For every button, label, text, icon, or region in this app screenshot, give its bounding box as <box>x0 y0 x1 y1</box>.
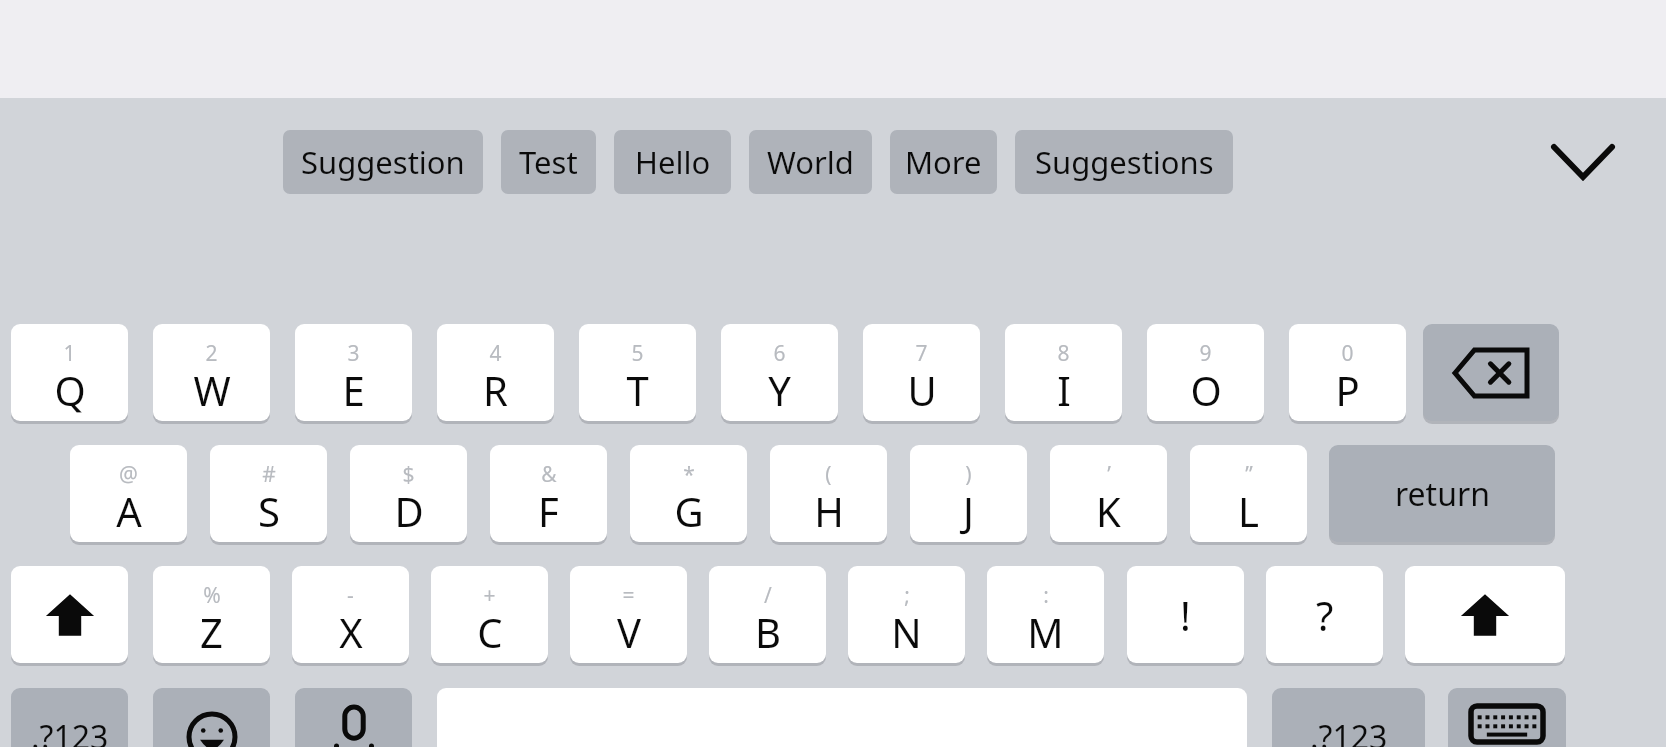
staticText: X <box>339 605 363 659</box>
button[interactable]: 5 <box>579 324 696 421</box>
button[interactable]: .?123 <box>11 688 128 747</box>
staticText: S <box>258 484 280 538</box>
button[interactable]: * <box>630 445 747 542</box>
staticText: T <box>626 363 649 417</box>
staticText: + <box>483 581 496 610</box>
button[interactable]: : <box>987 566 1104 663</box>
button[interactable]: Shift <box>11 566 128 663</box>
button[interactable]: 7 <box>863 324 980 421</box>
staticText: ( <box>825 460 832 489</box>
button[interactable]: 1 <box>11 324 128 421</box>
staticText: K <box>1096 484 1121 538</box>
button[interactable]: ) <box>910 445 1027 542</box>
staticText: 4 <box>489 339 502 368</box>
staticText: N <box>891 605 922 659</box>
staticText: 0 <box>1341 339 1354 368</box>
button[interactable]: 0 <box>1289 324 1406 421</box>
staticText: 9 <box>1199 339 1212 368</box>
staticText: / <box>764 581 772 610</box>
button[interactable]: ” <box>1190 445 1307 542</box>
staticText: 5 <box>631 339 644 368</box>
button[interactable]: .?123 <box>1272 688 1425 747</box>
staticText: 2 <box>205 339 218 368</box>
button[interactable]: / <box>709 566 826 663</box>
button[interactable]: - <box>292 566 409 663</box>
staticText: A <box>116 484 142 538</box>
button[interactable]: Hide keyboard <box>1448 688 1566 747</box>
staticText: G <box>674 484 704 538</box>
staticText: 7 <box>915 339 928 368</box>
button[interactable]: + <box>431 566 548 663</box>
staticText: * <box>683 460 695 489</box>
button[interactable]: 3 <box>295 324 412 421</box>
staticText: Z <box>200 605 223 659</box>
button[interactable]: More <box>890 130 997 194</box>
staticText: B <box>755 605 781 659</box>
staticText: ? <box>1316 588 1334 642</box>
staticText: O <box>1190 363 1222 417</box>
staticText: E <box>342 363 365 417</box>
button[interactable]: 2 <box>153 324 270 421</box>
staticText: Suggestion <box>301 141 465 183</box>
staticText: 3 <box>347 339 360 368</box>
button[interactable]: Suggestion <box>283 130 483 194</box>
button[interactable]: = <box>570 566 687 663</box>
button[interactable]: 9 <box>1147 324 1264 421</box>
button[interactable]: $ <box>350 445 467 542</box>
button[interactable]: 8 <box>1005 324 1122 421</box>
staticText: @ <box>119 460 138 489</box>
staticText: = <box>622 581 635 610</box>
staticText: F <box>538 484 559 538</box>
button[interactable]: % <box>153 566 270 663</box>
staticText: P <box>1335 363 1360 417</box>
button[interactable]: & <box>490 445 607 542</box>
button[interactable]: 4 <box>437 324 554 421</box>
staticText: C <box>477 605 503 659</box>
staticText: J <box>963 484 974 538</box>
staticText: Test <box>519 141 578 183</box>
staticText: Q <box>54 363 86 417</box>
staticText: L <box>1238 484 1259 538</box>
staticText: W <box>193 363 231 417</box>
staticText: ” <box>1245 460 1253 489</box>
button[interactable]: Backspace <box>1423 324 1559 421</box>
button[interactable]: Hide suggestions <box>1528 127 1638 197</box>
button[interactable]: Hello <box>614 130 731 194</box>
staticText: ’ <box>1107 460 1111 489</box>
staticText: # <box>262 460 276 489</box>
staticText: 6 <box>773 339 786 368</box>
staticText: ; <box>904 581 910 610</box>
staticText: World <box>767 141 854 183</box>
staticText: 8 <box>1057 339 1070 368</box>
staticText: & <box>541 460 557 489</box>
button[interactable]: ; <box>848 566 965 663</box>
staticText: ! <box>1180 588 1191 642</box>
button[interactable]: Test <box>501 130 596 194</box>
button[interactable]: # <box>210 445 327 542</box>
staticText: Hello <box>635 141 711 183</box>
staticText: V <box>617 605 641 659</box>
staticText: - <box>347 581 354 610</box>
button[interactable]: ’ <box>1050 445 1167 542</box>
staticText: Suggestions <box>1035 141 1214 183</box>
button[interactable]: Emoji <box>153 688 270 747</box>
button[interactable]: 6 <box>721 324 838 421</box>
button[interactable]: Voice input <box>295 688 412 747</box>
button[interactable]: Shift <box>1405 566 1565 663</box>
staticText: .?123 <box>1310 715 1388 747</box>
button[interactable]: ? <box>1266 566 1383 663</box>
staticText: return <box>1395 472 1490 516</box>
button[interactable]: ( <box>770 445 887 542</box>
staticText: % <box>203 581 221 610</box>
staticText: More <box>905 141 982 183</box>
staticText: I <box>1057 363 1071 417</box>
staticText: Y <box>768 363 791 417</box>
staticText: 1 <box>63 339 76 368</box>
button[interactable]: ! <box>1127 566 1244 663</box>
button[interactable]: @ <box>70 445 187 542</box>
button[interactable]: Suggestions <box>1015 130 1233 194</box>
button[interactable]: World <box>749 130 872 194</box>
button[interactable]: return <box>1329 445 1555 542</box>
staticText: .?123 <box>31 715 109 747</box>
